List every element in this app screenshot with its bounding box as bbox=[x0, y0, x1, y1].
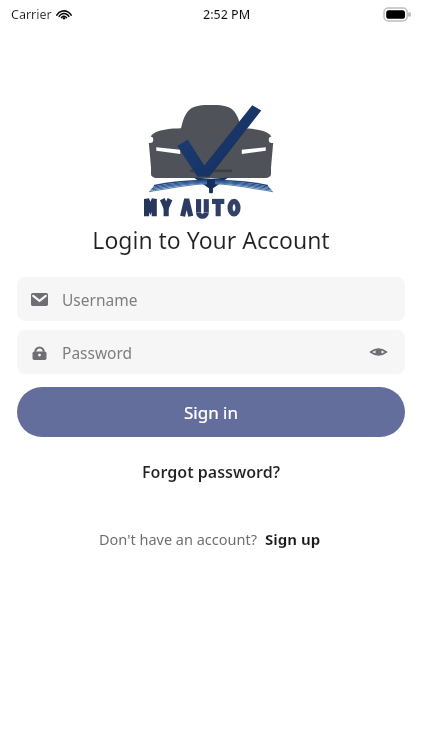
other: Email bbox=[31, 291, 48, 308]
button[interactable]: Show password bbox=[365, 339, 391, 365]
staticText: Sign up bbox=[265, 529, 321, 549]
staticText: Login to Your Account bbox=[92, 224, 330, 255]
staticText: Username bbox=[62, 289, 138, 310]
button[interactable]: Email bbox=[17, 277, 405, 321]
other: My Auto logo bbox=[136, 100, 286, 218]
button[interactable]: Sign in bbox=[17, 387, 405, 437]
staticText: Sign in bbox=[184, 401, 238, 424]
staticText: Password bbox=[62, 342, 133, 363]
staticText: Forgot password? bbox=[142, 461, 281, 483]
staticText: Carrier bbox=[11, 6, 52, 23]
button[interactable]: Password bbox=[17, 330, 405, 374]
button[interactable]: Sign up bbox=[263, 525, 323, 553]
other: Password bbox=[31, 344, 48, 361]
staticText: 2:52 PM bbox=[203, 6, 251, 23]
staticText: Don't have an account? bbox=[99, 529, 257, 549]
button[interactable]: Forgot password? bbox=[132, 455, 291, 489]
